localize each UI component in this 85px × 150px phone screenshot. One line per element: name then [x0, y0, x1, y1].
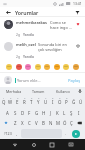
- button[interactable]: Back: [4, 8, 12, 16]
- button[interactable]: 4: [21, 95, 28, 106]
- staticText: 4: [24, 96, 26, 99]
- staticText: 6: [38, 96, 40, 99]
- button[interactable]: S: [11, 106, 19, 117]
- staticText: 2g: [16, 32, 20, 36]
- button[interactable]: 6: [35, 95, 42, 106]
- staticText: ,: [16, 131, 18, 136]
- staticText: I: [78, 110, 80, 116]
- staticText: N: [49, 120, 53, 126]
- button[interactable]: ?123: [2, 129, 14, 138]
- button[interactable]: Home: [29, 140, 38, 149]
- button[interactable]: G: [33, 106, 40, 117]
- staticText: P: [65, 99, 68, 105]
- button[interactable]: Emoji: [54, 64, 60, 70]
- button[interactable]: Send: [72, 130, 80, 138]
- button[interactable]: Emoji: [44, 64, 50, 70]
- button[interactable]: 7: [42, 95, 49, 106]
- button[interactable]: H: [40, 106, 47, 117]
- staticText: 1: [3, 96, 5, 99]
- staticText: ?123: [4, 131, 12, 136]
- button[interactable]: Sort comments: [73, 8, 81, 16]
- button[interactable]: N: [47, 117, 54, 128]
- staticText: Z: [14, 120, 17, 126]
- button[interactable]: Ç: [68, 117, 75, 128]
- button[interactable]: Emoji: [63, 64, 69, 70]
- button[interactable]: Like comment: [74, 42, 81, 49]
- button[interactable]: Z: [11, 117, 19, 128]
- staticText: R: [23, 99, 26, 105]
- button[interactable]: 5: [28, 95, 35, 106]
- button[interactable]: Comma: [14, 129, 20, 138]
- button[interactable]: Shift: [1, 117, 11, 128]
- staticText: T: [30, 99, 33, 105]
- button[interactable]: Emoji: [16, 64, 22, 70]
- button[interactable]: K: [54, 106, 61, 117]
- button[interactable]: mehmetkarakas: [0, 17, 85, 39]
- button[interactable]: Ğ: [70, 95, 77, 106]
- button[interactable]: 9: [56, 95, 63, 106]
- button[interactable]: Ü: [77, 95, 84, 106]
- staticText: Y: [37, 99, 40, 105]
- staticText: W: [8, 99, 13, 105]
- staticText: Merhaba: [6, 89, 22, 94]
- button[interactable]: B: [40, 117, 47, 128]
- staticText: V: [35, 120, 38, 126]
- staticText: 7: [45, 96, 47, 99]
- button[interactable]: Paylaş: [68, 78, 81, 83]
- button[interactable]: melih_ozel: [0, 39, 85, 61]
- staticText: 2g: [16, 54, 20, 58]
- button[interactable]: Period: [63, 129, 69, 138]
- button[interactable]: Tamam: [26, 87, 51, 95]
- button[interactable]: Emoji: [35, 64, 41, 70]
- button[interactable]: 0: [63, 95, 70, 106]
- staticText: Q: [2, 99, 6, 105]
- staticText: Como se hace ingo legends: [50, 20, 72, 30]
- button[interactable]: D: [19, 106, 26, 117]
- button[interactable]: Merhaba: [2, 87, 26, 95]
- staticText: I: [52, 99, 54, 105]
- button[interactable]: 3: [14, 95, 21, 106]
- button[interactable]: X: [19, 117, 26, 128]
- button[interactable]: Ş: [68, 106, 75, 117]
- button[interactable]: Back: [10, 140, 19, 149]
- staticText: J: [50, 110, 52, 116]
- staticText: 9: [59, 96, 61, 99]
- button[interactable]: I: [75, 106, 82, 117]
- button[interactable]: Like comment: [74, 20, 81, 27]
- staticText: M: [56, 120, 60, 126]
- button[interactable]: Yorum ekle…: [15, 78, 68, 83]
- button[interactable]: Emoji: [6, 64, 12, 70]
- button[interactable]: Emoji: [25, 64, 31, 70]
- button[interactable]: Hide keyboard: [66, 140, 75, 149]
- button[interactable]: J: [47, 106, 54, 117]
- staticText: Tamam: [32, 89, 45, 94]
- button[interactable]: M: [54, 117, 61, 128]
- button[interactable]: Recents: [47, 140, 56, 149]
- button[interactable]: C: [26, 117, 33, 128]
- button[interactable]: 1: [1, 95, 7, 106]
- button[interactable]: Emoji: [73, 64, 79, 70]
- staticText: B: [42, 120, 45, 126]
- button[interactable]: Backspace: [75, 117, 84, 128]
- staticText: Ç: [70, 120, 73, 126]
- button[interactable]: V: [33, 117, 40, 128]
- staticText: G: [35, 110, 39, 116]
- staticText: 13:41: [73, 1, 82, 6]
- staticText: Ğ: [72, 99, 76, 105]
- button[interactable]: L: [61, 106, 68, 117]
- button[interactable]: Kullanıcı: [51, 87, 76, 95]
- staticText: Yorumlar: [15, 9, 39, 16]
- button[interactable]: 8: [49, 95, 56, 106]
- button[interactable]: Yanıtla: [23, 32, 34, 36]
- staticText: 3: [17, 96, 19, 99]
- button[interactable]: Ö: [61, 117, 68, 128]
- staticText: Yorum ekle…: [17, 78, 41, 83]
- button[interactable]: Voice input: [76, 87, 83, 95]
- button[interactable]: 2: [7, 95, 14, 106]
- staticText: Kullanıcı: [56, 89, 71, 94]
- button[interactable]: Yanıtla: [23, 54, 34, 58]
- button[interactable]: A: [3, 106, 11, 117]
- button[interactable]: F: [26, 106, 33, 117]
